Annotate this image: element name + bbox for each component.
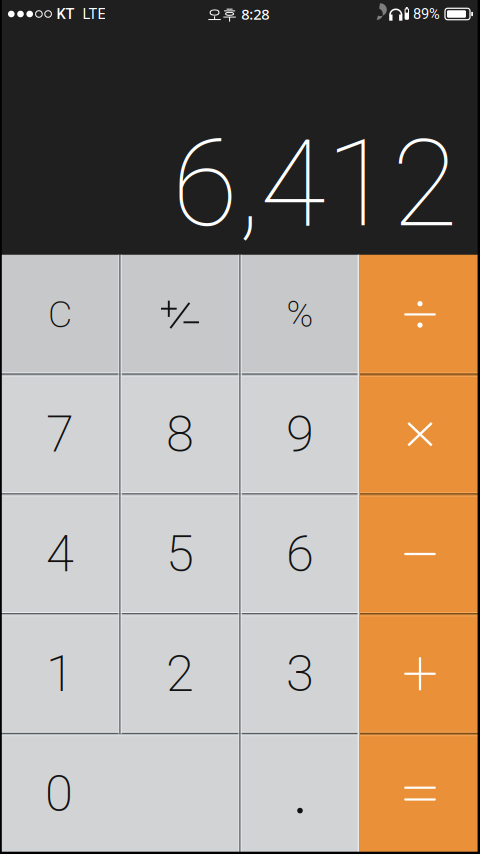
staticText: 8 xyxy=(166,404,194,464)
staticText: 1 xyxy=(46,644,74,703)
staticText: 6 xyxy=(286,524,314,584)
button[interactable]: 3 xyxy=(240,614,360,734)
staticText: 5 xyxy=(166,524,194,584)
button[interactable] xyxy=(360,254,480,374)
staticText: 2 xyxy=(166,644,194,703)
button[interactable]: 2 xyxy=(120,614,240,734)
staticText: 7 xyxy=(46,404,74,464)
staticText: C xyxy=(48,292,72,336)
staticText: 9 xyxy=(286,404,314,464)
button[interactable] xyxy=(360,614,480,734)
staticText: 4 xyxy=(46,524,74,584)
staticText: 오후 8:28 xyxy=(207,4,269,24)
staticText: KT xyxy=(56,5,74,23)
button[interactable]: 0 xyxy=(0,734,240,853)
staticText: 89% xyxy=(413,5,440,23)
button[interactable]: 4 xyxy=(0,494,120,614)
button[interactable]: 9 xyxy=(240,374,360,494)
button[interactable] xyxy=(360,734,480,853)
button[interactable]: 1 xyxy=(0,614,120,734)
button[interactable]: % xyxy=(240,254,360,374)
button[interactable] xyxy=(120,254,240,374)
staticText: % xyxy=(286,293,313,335)
staticText: 6,412 xyxy=(172,114,458,254)
button[interactable]: 8 xyxy=(120,374,240,494)
button[interactable]: 7 xyxy=(0,374,120,494)
button[interactable] xyxy=(360,374,480,494)
button[interactable]: 6 xyxy=(240,494,360,614)
staticText: 0 xyxy=(45,764,73,823)
button[interactable]: C xyxy=(0,254,120,374)
staticText: LTE xyxy=(82,5,105,23)
button[interactable]: 5 xyxy=(120,494,240,614)
button[interactable] xyxy=(240,734,360,853)
button[interactable] xyxy=(360,494,480,614)
staticText: 3 xyxy=(286,644,314,703)
